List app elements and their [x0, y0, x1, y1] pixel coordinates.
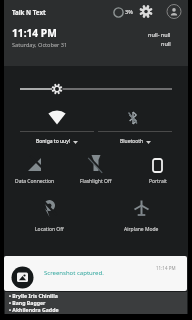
staticText: Airplane Mode — [124, 226, 159, 233]
staticText: Screenshot captured. — [44, 269, 104, 277]
staticText: Data Connection — [15, 178, 55, 185]
button[interactable]: Bluetooth — [98, 106, 172, 150]
button[interactable]: Airplane Mode — [111, 195, 172, 236]
staticText: Location Off — [35, 226, 64, 233]
staticText: Boniga to uuy! — [36, 138, 71, 145]
button[interactable]: Boniga to uuy! — [20, 106, 94, 150]
staticText: Saturday, October 31 — [12, 41, 68, 49]
staticText: null- null — [148, 31, 171, 38]
button[interactable]: Data Connection — [4, 150, 65, 188]
button[interactable] — [138, 4, 154, 20]
staticText: 3% — [125, 8, 133, 15]
button[interactable]: Screenshot captured. — [4, 256, 187, 291]
button[interactable]: Portrait — [127, 150, 188, 188]
button[interactable] — [166, 4, 182, 20]
button[interactable]: Flashlight Off — [65, 150, 127, 188]
staticText: Bluetooth — [120, 138, 144, 145]
button[interactable]: • Bang Bagger — [5, 299, 187, 306]
staticText: 11:14 PM — [156, 265, 176, 271]
staticText: Portrait — [149, 178, 167, 185]
staticText: Talk N Text — [12, 8, 46, 16]
staticText: • Bang Bagger — [9, 299, 46, 306]
button[interactable]: • Brylle Iris Chinilla — [5, 292, 187, 299]
button[interactable]: • Akhilendra Gadde — [5, 306, 187, 313]
staticText: • Brylle Iris Chinilla — [9, 292, 58, 299]
staticText: Flashlight Off — [80, 178, 112, 185]
staticText: • Akhilendra Gadde — [9, 306, 59, 313]
staticText: null — [161, 40, 171, 47]
staticText: 11:14 PM — [12, 26, 57, 40]
button[interactable]: Location Off — [19, 195, 80, 236]
